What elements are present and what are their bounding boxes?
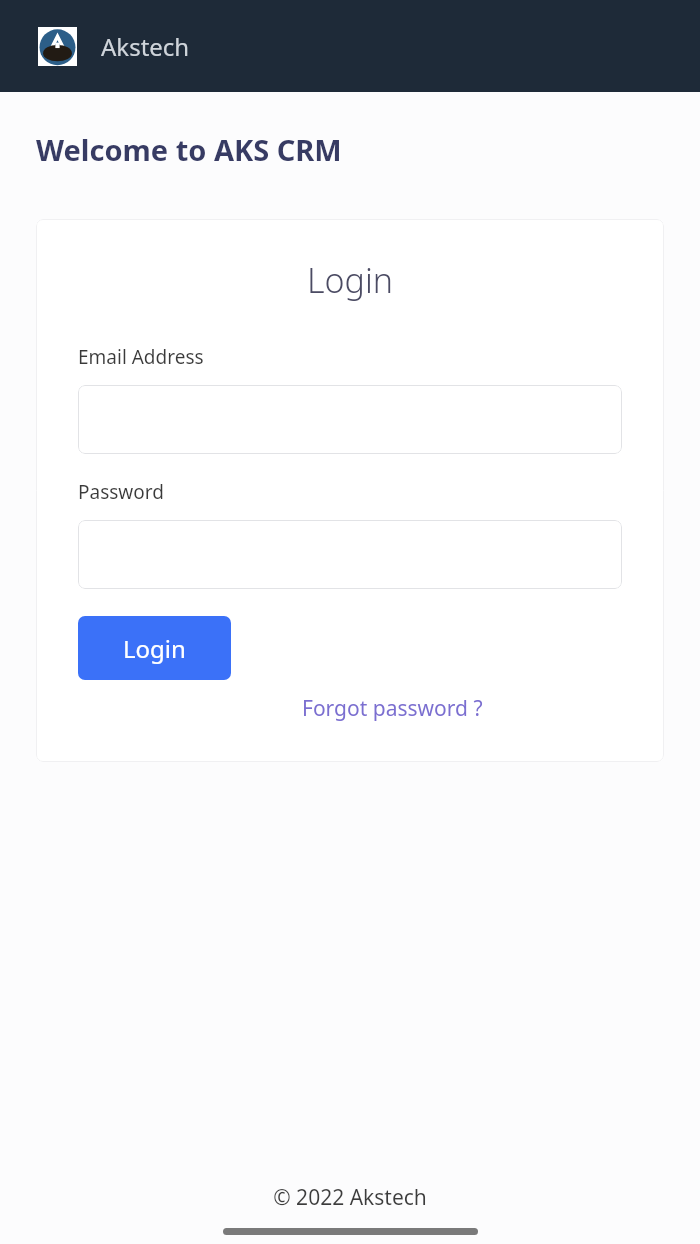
- staticText: Welcome to AKS CRM: [36, 130, 342, 169]
- staticText: Forgot password ?: [302, 694, 483, 723]
- staticText: Email Address: [78, 344, 204, 370]
- button[interactable]: Email Address field: [78, 385, 622, 454]
- button[interactable]: Forgot password ?: [302, 694, 483, 723]
- staticText: © 2022 Akstech: [0, 1183, 700, 1212]
- button[interactable]: Akstech logo: [38, 27, 77, 66]
- button[interactable]: Login: [78, 616, 231, 680]
- staticText: Login: [36, 257, 664, 303]
- staticText: Login: [123, 632, 186, 665]
- button[interactable]: Password field: [78, 520, 622, 589]
- staticText: Akstech: [101, 30, 190, 63]
- staticText: Password: [78, 479, 164, 505]
